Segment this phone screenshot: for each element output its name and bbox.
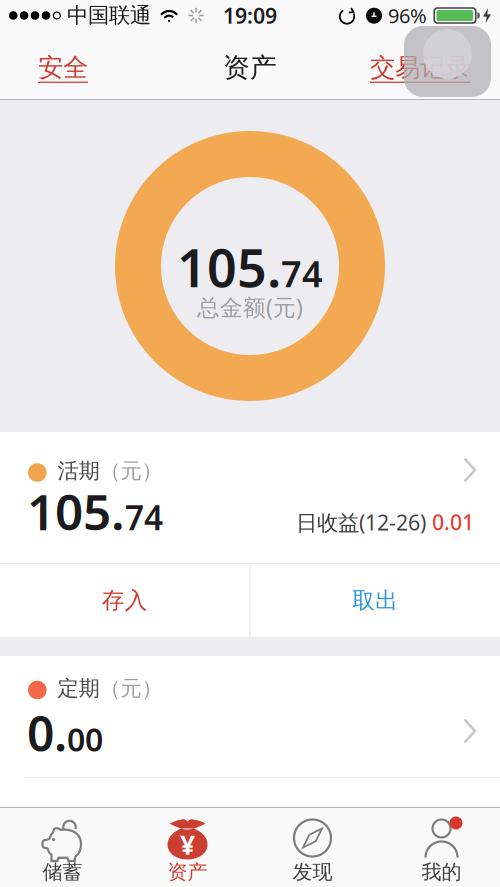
staticText: 105. (177, 232, 281, 302)
staticText: 74 (281, 249, 323, 297)
button[interactable]: 活期 (0, 432, 500, 563)
staticText: （元） (100, 675, 163, 702)
staticText: 取出 (352, 587, 398, 614)
staticText: ¥ (180, 827, 195, 862)
button[interactable]: 取出 (250, 564, 500, 637)
staticText: 105. (27, 478, 125, 544)
staticText: 19:09 (223, 1, 277, 30)
button[interactable]: 安全 (38, 52, 88, 83)
staticText: 0. (27, 701, 67, 765)
staticText: 总金额(元) (197, 292, 303, 322)
button[interactable]: AssistiveTouch (404, 26, 491, 97)
staticText: 安全 (38, 52, 88, 83)
button[interactable]: 存入 (0, 564, 249, 637)
button[interactable]: 定期 (0, 656, 500, 807)
button[interactable]: ¥ (125, 808, 250, 887)
staticText: 96% (388, 2, 427, 29)
staticText: 活期 (58, 458, 100, 484)
staticText: 74 (125, 495, 163, 539)
staticText: 资产 (167, 860, 207, 884)
staticText: 中国联通 (67, 2, 151, 29)
staticText: 日收益(12-26) (296, 508, 426, 536)
staticText: （元） (100, 458, 163, 484)
staticText: 存入 (102, 587, 148, 614)
button[interactable]: 发现 (250, 808, 375, 887)
staticText: 定期 (58, 675, 100, 702)
button[interactable]: 我的 (375, 808, 500, 887)
staticText: 00 (67, 718, 103, 760)
button[interactable]: 储蓄 (0, 808, 125, 887)
staticText: 交易记录 (370, 52, 470, 83)
staticText: 发现 (292, 860, 332, 884)
staticText: 储蓄 (42, 860, 82, 884)
button[interactable]: 交易记录 (370, 52, 470, 83)
staticText: 我的 (421, 860, 461, 884)
staticText: 资产 (223, 51, 277, 84)
staticText: 0.01 (426, 508, 474, 536)
